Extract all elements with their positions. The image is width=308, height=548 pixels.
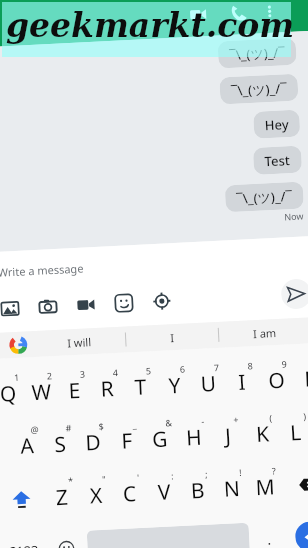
- staticText: E: [68, 376, 81, 405]
- button[interactable]: .: [252, 512, 285, 548]
- staticText: ?: [272, 464, 276, 476]
- button[interactable]: Call: [224, 0, 252, 26]
- staticText: $: [98, 420, 105, 432]
- staticText: P: [304, 364, 308, 394]
- staticText: 5: [145, 364, 152, 376]
- button[interactable]: ;: [179, 462, 216, 517]
- staticText: ¯\_(ツ)_/¯: [230, 79, 287, 100]
- staticText: ): [303, 410, 306, 422]
- staticText: 2: [47, 369, 53, 381]
- button[interactable]: Enter: [283, 509, 308, 548]
- button[interactable]: 4: [89, 361, 125, 415]
- staticText: Q: [0, 379, 17, 409]
- staticText: C: [122, 479, 138, 509]
- staticText: (: [269, 411, 273, 423]
- button[interactable]: Test: [253, 145, 302, 175]
- button[interactable]: I will: [33, 326, 126, 357]
- button[interactable]: Video call: [184, 1, 212, 28]
- button[interactable]: 7: [190, 356, 227, 410]
- staticText: Write a message: [0, 260, 84, 280]
- staticText: ;: [205, 468, 208, 480]
- button[interactable]: _: [108, 413, 144, 467]
- button[interactable]: !: [213, 461, 250, 515]
- staticText: X: [89, 481, 104, 510]
- staticText: @: [30, 423, 40, 435]
- staticText: W: [31, 377, 52, 407]
- staticText: A: [20, 431, 35, 461]
- button[interactable]: More options: [259, 0, 280, 21]
- staticText: 7: [213, 361, 220, 373]
- button[interactable]: 5: [122, 359, 159, 414]
- staticText: 8: [247, 359, 254, 371]
- staticText: J: [224, 421, 232, 451]
- staticText: !: [239, 466, 242, 478]
- button[interactable]: Sticker: [103, 283, 143, 322]
- button[interactable]: $: [75, 414, 111, 469]
- staticText: I am: [253, 325, 277, 341]
- staticText: _: [132, 418, 137, 430]
- staticText: *: [68, 474, 73, 486]
- button[interactable]: I am: [218, 317, 308, 348]
- button[interactable]: Send: [280, 278, 308, 310]
- staticText: .: [267, 529, 272, 548]
- button[interactable]: 1: [0, 366, 26, 420]
- staticText: O: [268, 366, 286, 395]
- button[interactable]: ': [112, 466, 148, 520]
- button[interactable]: ): [278, 404, 308, 459]
- button[interactable]: ¯\_(ツ)_/¯: [225, 181, 304, 212]
- button[interactable]: Google search: [3, 331, 34, 359]
- staticText: I will: [67, 334, 92, 350]
- staticText: 3: [80, 367, 86, 380]
- staticText: 6: [179, 362, 186, 375]
- staticText: I: [170, 330, 174, 345]
- staticText: Now: [284, 209, 305, 222]
- button[interactable]: +: [210, 408, 246, 462]
- button[interactable]: 0: [292, 350, 308, 405]
- button[interactable]: ?123: [0, 524, 51, 548]
- staticText: L: [289, 418, 303, 447]
- staticText: ¯\_(ツ)_/¯: [229, 43, 286, 64]
- button[interactable]: 3: [56, 362, 92, 417]
- staticText: ¯\_(ツ)_/¯: [236, 187, 293, 208]
- staticText: T: [134, 372, 147, 402]
- button[interactable]: &: [142, 411, 178, 466]
- staticText: N: [223, 474, 240, 504]
- button[interactable]: Take photo: [28, 286, 67, 326]
- button[interactable]: Backspace: [281, 456, 308, 512]
- staticText: H: [185, 423, 203, 453]
- button[interactable]: :: [145, 464, 182, 519]
- button[interactable]: I: [126, 322, 219, 352]
- staticText: #: [65, 421, 72, 434]
- staticText: D: [85, 428, 102, 458]
- button[interactable]: Shift: [0, 471, 47, 526]
- staticText: U: [200, 369, 217, 399]
- button[interactable]: Share location: [141, 281, 181, 320]
- staticText: Y: [168, 371, 181, 400]
- button[interactable]: 9: [258, 352, 295, 407]
- button[interactable]: Hey: [253, 110, 300, 139]
- button[interactable]: 2: [23, 364, 59, 419]
- button[interactable]: ?: [247, 459, 284, 513]
- button[interactable]: Emoji: [48, 522, 85, 548]
- button[interactable]: Insert photo: [0, 288, 29, 328]
- button[interactable]: (: [244, 406, 280, 461]
- staticText: 9: [281, 357, 288, 370]
- staticText: Test: [264, 151, 291, 170]
- button[interactable]: Space: [87, 523, 250, 548]
- button[interactable]: ": [78, 467, 114, 522]
- button[interactable]: 6: [156, 357, 193, 412]
- button[interactable]: *: [45, 469, 80, 524]
- staticText: ': [137, 471, 140, 483]
- button[interactable]: -: [176, 409, 212, 464]
- staticText: 4: [112, 366, 119, 378]
- button[interactable]: Record video: [65, 284, 105, 324]
- button[interactable]: 8: [224, 354, 261, 408]
- staticText: G: [151, 424, 169, 454]
- button[interactable]: #: [42, 416, 78, 471]
- staticText: ?123: [10, 541, 39, 548]
- staticText: -: [201, 415, 205, 427]
- button[interactable]: ¯\_(ツ)_/¯: [219, 74, 298, 104]
- button[interactable]: ¯\_(ツ)_/¯: [217, 38, 297, 68]
- staticText: M: [255, 472, 276, 502]
- button[interactable]: @: [9, 418, 45, 472]
